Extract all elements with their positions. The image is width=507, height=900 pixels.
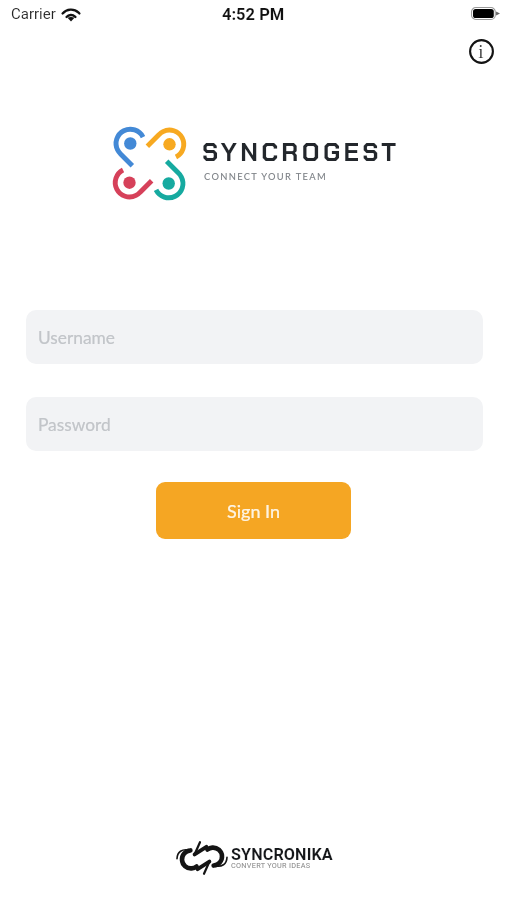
staticText: SYNCRONIKA (231, 845, 333, 864)
staticText: Username (38, 327, 115, 348)
button[interactable]: Information (465, 35, 497, 67)
staticText: i (478, 41, 484, 62)
staticText: SYNCROGEST (202, 136, 400, 169)
staticText: Sign In (227, 500, 280, 522)
button[interactable]: Password (26, 397, 483, 451)
button[interactable]: Username (26, 310, 483, 364)
staticText: Carrier (11, 5, 56, 23)
button[interactable]: Sign In (156, 482, 351, 539)
staticText: CONVERT YOUR IDEAS (231, 861, 311, 870)
staticText: 4:52 PM (222, 5, 285, 24)
staticText: CONNECT YOUR TEAM (204, 171, 327, 182)
staticText: Password (38, 414, 111, 435)
